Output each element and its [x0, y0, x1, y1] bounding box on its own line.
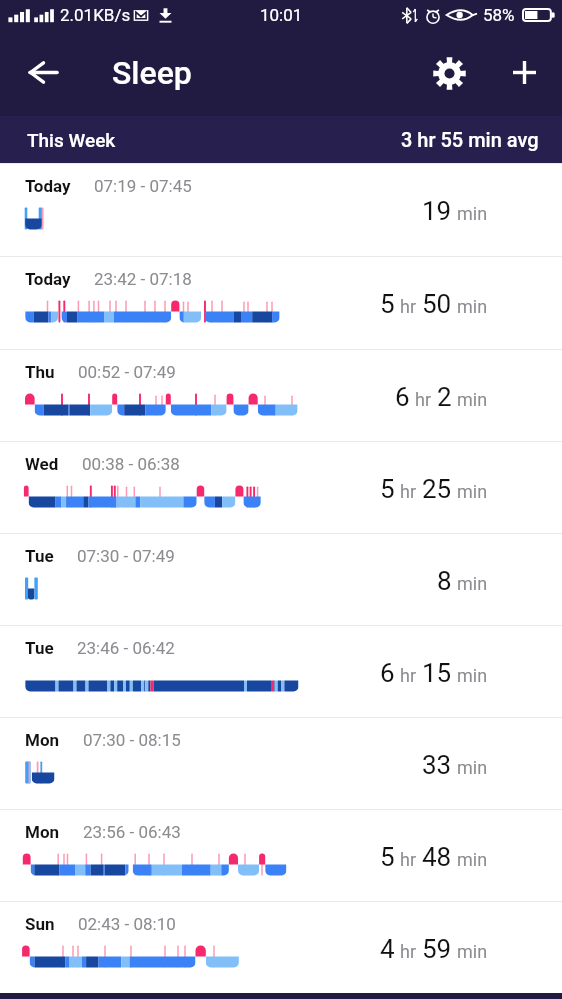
- button[interactable]: Sun: [0, 901, 562, 993]
- button[interactable]: Tue: [0, 625, 562, 717]
- button[interactable]: Add: [501, 49, 548, 96]
- staticText: min: [457, 573, 488, 594]
- staticText: 25: [422, 474, 452, 504]
- staticText: Sleep: [112, 54, 192, 92]
- staticText: 5: [380, 842, 395, 872]
- staticText: 23:56 - 06:43: [83, 822, 181, 842]
- staticText: 23:46 - 06:42: [77, 638, 175, 658]
- staticText: 6: [380, 658, 395, 688]
- staticText: 5: [380, 474, 395, 504]
- staticText: Wed: [25, 454, 59, 474]
- staticText: Today: [25, 269, 71, 289]
- button[interactable]: Wed: [0, 441, 562, 533]
- staticText: 07:30 - 07:49: [77, 546, 175, 566]
- staticText: 33: [422, 750, 452, 780]
- staticText: 4: [380, 934, 395, 964]
- staticText: hr: [415, 389, 432, 410]
- button[interactable]: Back: [15, 44, 72, 101]
- staticText: Mon: [25, 822, 60, 842]
- staticText: Mon: [25, 730, 60, 750]
- staticText: min: [457, 389, 488, 410]
- staticText: min: [457, 665, 488, 686]
- button[interactable]: Tue: [0, 533, 562, 625]
- button[interactable]: This Week: [0, 116, 562, 163]
- staticText: Tue: [25, 546, 54, 566]
- staticText: 6: [395, 382, 410, 412]
- button[interactable]: Today: [0, 163, 562, 256]
- staticText: 07:19 - 07:45: [94, 176, 192, 196]
- staticText: Thu: [25, 362, 55, 382]
- staticText: 07:30 - 08:15: [83, 730, 181, 750]
- staticText: 10:01: [260, 5, 303, 25]
- staticText: 19: [422, 196, 452, 226]
- staticText: 2: [437, 382, 452, 412]
- staticText: 3 hr 55 min avg: [401, 128, 539, 151]
- staticText: Tue: [25, 638, 54, 658]
- staticText: hr: [400, 849, 417, 870]
- staticText: 58%: [483, 5, 515, 25]
- staticText: Today: [25, 176, 71, 196]
- staticText: min: [457, 757, 488, 778]
- staticText: 00:52 - 07:49: [78, 362, 176, 382]
- staticText: 00:38 - 06:38: [82, 454, 180, 474]
- staticText: 50: [422, 289, 452, 319]
- staticText: hr: [400, 481, 417, 502]
- staticText: 48: [422, 842, 452, 872]
- staticText: hr: [400, 296, 417, 317]
- staticText: hr: [400, 665, 417, 686]
- staticText: 15: [422, 658, 452, 688]
- staticText: min: [457, 481, 488, 502]
- staticText: This Week: [27, 129, 116, 151]
- staticText: min: [457, 203, 488, 224]
- staticText: 02:43 - 08:10: [78, 914, 176, 934]
- staticText: 8: [437, 566, 452, 596]
- button[interactable]: Settings: [425, 49, 473, 97]
- button[interactable]: Thu: [0, 349, 562, 441]
- staticText: hr: [400, 941, 417, 962]
- staticText: 2.01KB/s: [60, 5, 131, 25]
- button[interactable]: Mon: [0, 809, 562, 901]
- staticText: 59: [422, 934, 452, 964]
- staticText: Sun: [25, 914, 55, 934]
- staticText: 5: [380, 289, 395, 319]
- staticText: min: [457, 941, 488, 962]
- staticText: 23:42 - 07:18: [94, 269, 192, 289]
- staticText: min: [457, 849, 488, 870]
- button[interactable]: Mon: [0, 717, 562, 809]
- staticText: min: [457, 296, 488, 317]
- button[interactable]: Today: [0, 256, 562, 349]
